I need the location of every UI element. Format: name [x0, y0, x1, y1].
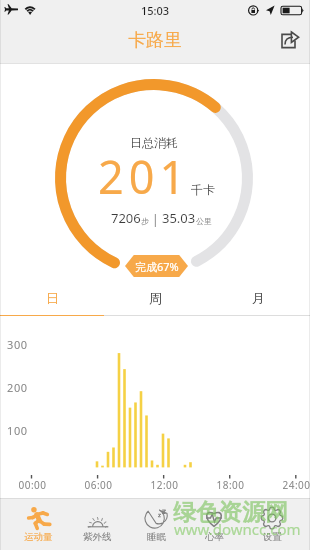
staticText: 周 — [149, 290, 162, 306]
staticText: 200 — [7, 380, 28, 395]
button[interactable]: 日 — [0, 284, 104, 316]
staticText: 千卡 — [191, 182, 215, 197]
button[interactable]: 紫外线 — [68, 498, 127, 550]
staticText: 06:00 — [84, 478, 113, 492]
staticText: | — [149, 211, 162, 227]
staticText: 300 — [7, 337, 28, 352]
staticText: 201 — [98, 146, 191, 207]
staticText: 公里 — [196, 216, 212, 226]
staticText: 紫外线 — [83, 531, 112, 543]
button[interactable]: 睡眠 — [127, 498, 185, 550]
staticText: 心率 — [205, 531, 224, 543]
staticText: 18:00 — [216, 478, 245, 492]
staticText: 设置 — [263, 531, 282, 543]
button[interactable]: 心率 — [185, 498, 243, 550]
staticText: 日总消耗 — [130, 135, 178, 150]
staticText: 日 — [46, 290, 59, 306]
staticText: 35.03 — [162, 209, 196, 227]
staticText: 运动量 — [24, 531, 53, 543]
staticText: 完成67% — [135, 259, 179, 274]
staticText: 月 — [252, 290, 265, 306]
button[interactable]: Share — [272, 23, 306, 57]
staticText: 步 — [141, 216, 149, 226]
button[interactable]: 设置 — [243, 498, 301, 550]
button[interactable]: 完成67% — [125, 255, 188, 277]
button[interactable]: 运动量 — [9, 498, 68, 550]
staticText: 00:00 — [18, 478, 47, 492]
staticText: 7206 — [111, 209, 141, 227]
button[interactable]: 月 — [207, 284, 310, 316]
staticText: 100 — [7, 423, 28, 438]
staticText: 15:03 — [141, 3, 170, 18]
staticText: 睡眠 — [147, 531, 166, 543]
staticText: 绿色资源网 — [173, 498, 288, 527]
button[interactable]: 周 — [104, 284, 207, 316]
staticText: 12:00 — [150, 478, 179, 492]
staticText: www.downcc.com — [174, 519, 301, 539]
staticText: 卡路里 — [128, 29, 182, 52]
staticText: 24:00 — [282, 478, 310, 492]
